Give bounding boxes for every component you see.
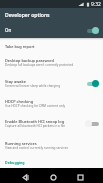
staticText: Debugging xyxy=(5,160,25,165)
staticText: Desktop backup password xyxy=(5,58,54,63)
button[interactable]: Recent apps xyxy=(73,170,88,183)
staticText: On xyxy=(5,27,12,33)
staticText: Enable Bluetooth HCI snoop log xyxy=(5,119,65,124)
button[interactable]: On xyxy=(0,22,103,38)
button[interactable]: Stay awake xyxy=(0,73,103,93)
staticText: 9:32 xyxy=(91,1,101,8)
staticText: Stay awake xyxy=(5,79,26,84)
staticText: Running services xyxy=(5,141,37,146)
staticText: Take bug report xyxy=(5,44,35,49)
button[interactable]: Running services xyxy=(0,134,103,156)
button[interactable]: Home xyxy=(46,170,61,183)
staticText: HDCP checking xyxy=(5,99,34,104)
button[interactable]: Back xyxy=(18,170,33,183)
button[interactable]: HDCP checking xyxy=(0,93,103,113)
staticText: Capture all bluetooth HCI packets in a f… xyxy=(5,124,66,128)
staticText: Desktop full backups aren't currently pr… xyxy=(5,63,74,67)
staticText: Use HDCP checking for DRM content only xyxy=(5,104,66,108)
button[interactable]: Take bug report xyxy=(0,41,103,51)
button[interactable]: Enable Bluetooth HCI snoop log xyxy=(0,113,103,134)
staticText: Screen will never sleep while charging xyxy=(5,84,61,88)
staticText: Developer options xyxy=(5,12,50,19)
staticText: View and control currently running servi… xyxy=(5,146,68,150)
button[interactable]: Desktop backup password xyxy=(0,51,103,73)
